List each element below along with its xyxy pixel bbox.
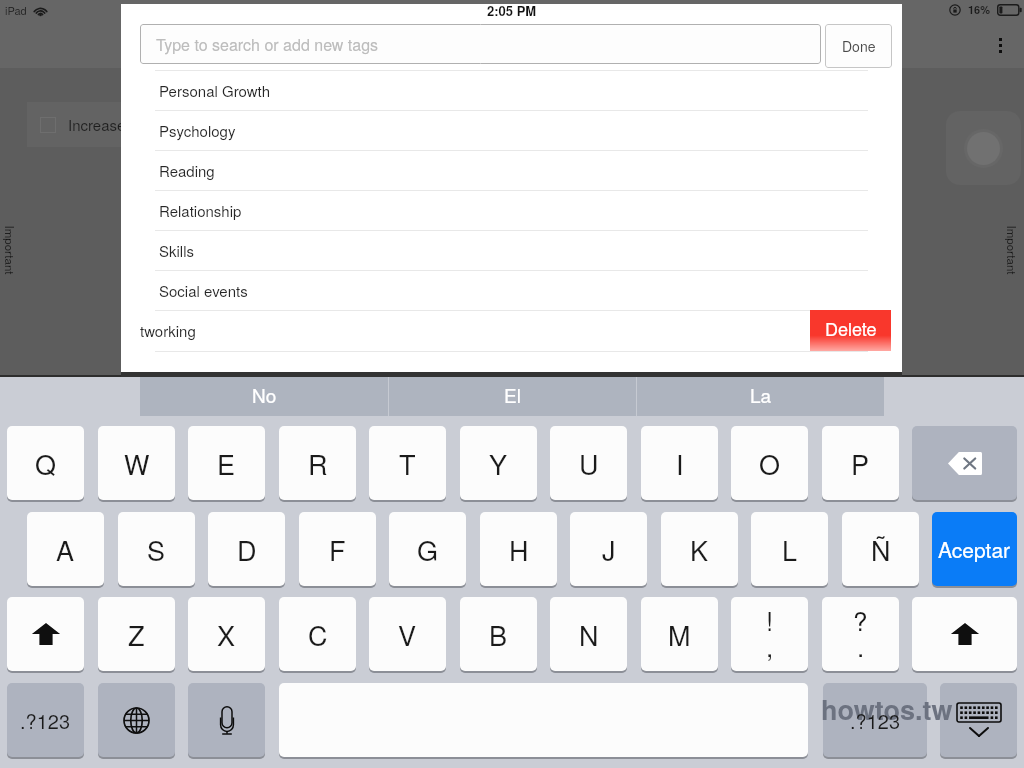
- button[interactable]: U: [550, 426, 627, 500]
- staticText: !: [766, 601, 774, 638]
- staticText: Ñ: [871, 530, 891, 569]
- button[interactable]: E: [188, 426, 265, 500]
- staticText: M: [668, 615, 691, 654]
- staticText: P: [851, 444, 870, 483]
- staticText: Q: [35, 444, 57, 483]
- button[interactable]: Increase: [27, 102, 159, 147]
- staticText: A: [56, 530, 75, 569]
- staticText: .?123: [20, 706, 71, 735]
- staticText: X: [217, 615, 236, 654]
- button[interactable]: More options: [993, 29, 1007, 57]
- staticText: El: [504, 381, 521, 408]
- button[interactable]: La: [637, 377, 884, 416]
- staticText: .: [857, 627, 865, 664]
- button[interactable]: tworking: [121, 310, 902, 351]
- staticText: iPad: [5, 2, 27, 18]
- button[interactable]: Social events: [121, 270, 902, 310]
- staticText: ,: [766, 627, 774, 664]
- button[interactable]: S: [118, 512, 195, 586]
- button[interactable]: A: [27, 512, 104, 586]
- staticText: C: [308, 615, 328, 654]
- staticText: Relationship: [159, 200, 242, 221]
- staticText: S: [147, 530, 166, 569]
- staticText: Aceptar: [938, 534, 1011, 564]
- button[interactable]: X: [188, 597, 265, 671]
- staticText: L: [782, 530, 798, 569]
- button[interactable]: Skills: [121, 230, 902, 270]
- staticText: Important: [1003, 225, 1019, 274]
- button[interactable]: N: [550, 597, 627, 671]
- button[interactable]: C: [279, 597, 356, 671]
- button[interactable]: J: [570, 512, 647, 586]
- button[interactable]: Psychology: [121, 110, 902, 150]
- staticText: Delete: [825, 315, 877, 341]
- staticText: B: [489, 615, 508, 654]
- button[interactable]: Reading: [121, 150, 902, 190]
- button[interactable]: M: [641, 597, 718, 671]
- button[interactable]: I: [641, 426, 718, 500]
- staticText: La: [750, 381, 772, 408]
- button[interactable]: H: [480, 512, 557, 586]
- button[interactable]: D: [208, 512, 285, 586]
- staticText: H: [509, 530, 529, 569]
- staticText: howtos.tw: [821, 690, 953, 729]
- staticText: Personal Growth: [159, 80, 271, 101]
- button[interactable]: K: [661, 512, 738, 586]
- staticText: W: [124, 444, 150, 483]
- button[interactable]: Backspace: [912, 426, 1017, 500]
- button[interactable]: No: [140, 377, 388, 416]
- button[interactable]: Ñ: [842, 512, 919, 586]
- button[interactable]: R: [279, 426, 356, 500]
- staticText: E: [217, 444, 236, 483]
- staticText: I: [676, 444, 684, 483]
- staticText: tworking: [140, 320, 196, 341]
- staticText: Z: [128, 615, 145, 654]
- button[interactable]: ?: [822, 597, 899, 671]
- staticText: 16%: [968, 2, 991, 18]
- staticText: N: [579, 615, 599, 654]
- staticText: Important: [1, 225, 17, 274]
- button[interactable]: Shift: [912, 597, 1017, 671]
- button[interactable]: Delete: [810, 310, 891, 351]
- staticText: F: [329, 530, 346, 569]
- button[interactable]: Relationship: [121, 190, 902, 230]
- button[interactable]: L: [751, 512, 828, 586]
- button[interactable]: .?123: [823, 683, 927, 757]
- staticText: Psychology: [159, 120, 236, 141]
- button[interactable]: .?123: [7, 683, 84, 757]
- button[interactable]: Change keyboard: [98, 683, 175, 757]
- button[interactable]: Done: [825, 24, 892, 68]
- button[interactable]: W: [98, 426, 175, 500]
- button[interactable]: Q: [7, 426, 84, 500]
- button[interactable]: Aceptar: [932, 512, 1017, 586]
- button[interactable]: T: [369, 426, 446, 500]
- button[interactable]: Type to search or add new tags: [140, 24, 821, 64]
- button[interactable]: Hide keyboard: [940, 683, 1017, 757]
- staticText: Y: [489, 444, 508, 483]
- button[interactable]: [946, 111, 1021, 185]
- button[interactable]: V: [369, 597, 446, 671]
- button[interactable]: Personal Growth: [121, 70, 902, 110]
- button[interactable]: !: [731, 597, 808, 671]
- button[interactable]: Dictate: [188, 683, 265, 757]
- button[interactable]: P: [822, 426, 899, 500]
- button[interactable]: G: [389, 512, 466, 586]
- staticText: No: [252, 381, 277, 408]
- button[interactable]: Z: [98, 597, 175, 671]
- staticText: 2:05 PM: [487, 1, 537, 20]
- button[interactable]: El: [389, 377, 636, 416]
- staticText: T: [399, 444, 416, 483]
- staticText: O: [759, 444, 781, 483]
- staticText: D: [237, 530, 257, 569]
- staticText: Skills: [159, 240, 194, 261]
- button[interactable]: Shift: [7, 597, 84, 671]
- staticText: K: [690, 530, 709, 569]
- staticText: Reading: [159, 160, 215, 181]
- button[interactable]: Y: [460, 426, 537, 500]
- staticText: U: [579, 444, 599, 483]
- staticText: J: [602, 530, 616, 569]
- button[interactable]: B: [460, 597, 537, 671]
- button[interactable]: F: [299, 512, 376, 586]
- button[interactable]: O: [731, 426, 808, 500]
